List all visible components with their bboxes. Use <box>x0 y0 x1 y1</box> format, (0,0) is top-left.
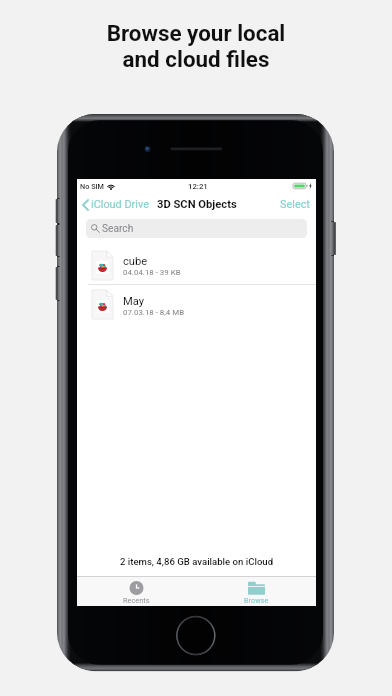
staticText: cube <box>123 255 148 268</box>
staticText: May <box>123 295 145 308</box>
button[interactable]: cube <box>77 246 316 285</box>
staticText: Recents <box>123 596 150 605</box>
button[interactable]: Browse <box>196 577 316 606</box>
staticText: Browse <box>244 596 269 605</box>
staticText: 07.03.18 - 8,4 MB <box>123 308 185 317</box>
staticText: 04.04.18 - 39 KB <box>123 268 181 277</box>
staticText: 12:21 <box>188 182 208 191</box>
staticText: 2 items, 4,86 GB available on iCloud <box>77 556 316 567</box>
button[interactable]: Select <box>280 198 316 211</box>
button[interactable]: Recents <box>77 577 196 606</box>
staticText: No SIM <box>80 182 104 191</box>
staticText: Browse your local and cloud files <box>0 20 392 72</box>
button[interactable]: Search <box>86 219 307 238</box>
staticText: iCloud Drive <box>91 198 149 211</box>
staticText: Search <box>102 223 134 235</box>
staticText: 3D SCN Objects <box>157 198 237 211</box>
button[interactable]: iCloud Drive <box>77 198 153 211</box>
button[interactable]: May <box>77 285 316 324</box>
